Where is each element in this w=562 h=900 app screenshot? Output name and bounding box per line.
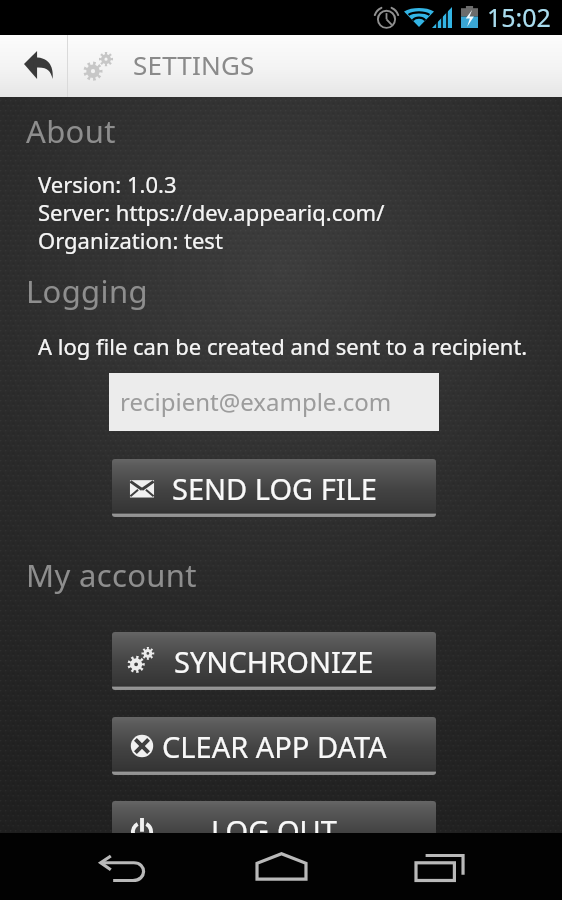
staticText: Organization: test (38, 225, 223, 255)
button[interactable]: LOG OUT (112, 801, 436, 859)
button[interactable]: Recent apps (390, 833, 490, 900)
staticText: Server: https://dev.appeariq.com/ (38, 197, 385, 227)
staticText: About (26, 110, 116, 152)
staticText: SETTINGS (133, 47, 255, 82)
button[interactable]: Home (231, 833, 331, 900)
staticText: A log file can be created and sent to a … (38, 331, 528, 361)
button[interactable]: Navigate up (0, 35, 67, 97)
button[interactable]: Back (75, 833, 175, 900)
staticText: 15:02 (487, 0, 551, 34)
button[interactable]: SEND LOG FILE (112, 459, 436, 517)
staticText: LOG OUT (211, 811, 337, 850)
button[interactable]: CLEAR APP DATA (112, 717, 436, 775)
staticText: recipient@example.com (120, 385, 392, 418)
staticText: SYNCHRONIZE (174, 642, 374, 681)
staticText: CLEAR APP DATA (162, 727, 387, 766)
staticText: Version: 1.0.3 (38, 169, 177, 199)
button[interactable]: recipient@example.com (109, 373, 439, 431)
staticText: My account (26, 554, 197, 596)
button[interactable]: SYNCHRONIZE (112, 632, 436, 690)
staticText: Logging (26, 270, 148, 312)
staticText: SEND LOG FILE (172, 469, 377, 508)
